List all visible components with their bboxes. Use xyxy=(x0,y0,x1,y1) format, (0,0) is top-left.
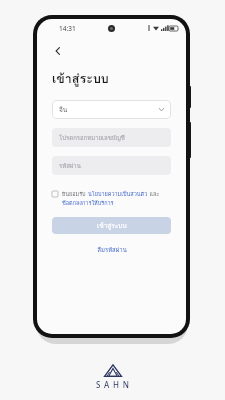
staticText: ข้อตกลงการให้บริการ xyxy=(62,199,114,208)
staticText: ยินยอมรับ xyxy=(62,190,88,199)
button[interactable]: โปรดกรอกหมายเลขบัญชี xyxy=(52,128,171,147)
staticText: จีน xyxy=(59,105,68,115)
button[interactable]: ลืมรหัสผ่าน xyxy=(91,243,133,257)
staticText: นโยบายความเป็นส่วนตัว xyxy=(88,190,148,199)
button[interactable]: Back xyxy=(49,42,67,60)
staticText: รหัสผ่าน xyxy=(59,161,81,171)
staticText: S A H N xyxy=(96,379,130,390)
staticText: โปรดกรอกหมายเลขบัญชี xyxy=(59,133,125,143)
button[interactable]: รหัสผ่าน xyxy=(52,156,171,175)
staticText: เข้าสู่ระบบ xyxy=(52,69,109,89)
staticText: เข้าสู่ระบบ xyxy=(97,221,127,231)
staticText: ลืมรหัสผ่าน xyxy=(97,245,127,255)
button[interactable]: เข้าสู่ระบบ xyxy=(52,217,171,234)
button[interactable]: ยินยอมรับ xyxy=(52,189,171,209)
staticText: และ xyxy=(148,190,160,199)
button[interactable]: จีน xyxy=(52,100,171,119)
staticText: 14:31 xyxy=(59,24,76,33)
